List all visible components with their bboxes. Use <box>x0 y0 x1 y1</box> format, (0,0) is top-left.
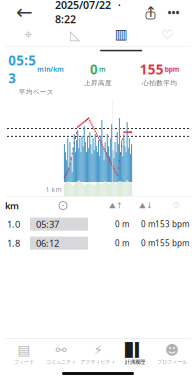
staticText: ▊▍ <box>125 343 145 358</box>
staticText: min/km <box>37 65 64 74</box>
staticText: 上昇高度 <box>84 79 112 87</box>
button[interactable]: Heart rate <box>144 24 190 46</box>
staticText: 0 m <box>115 238 129 248</box>
staticText: ☻ <box>165 343 179 358</box>
staticText: 05:37 <box>36 218 59 230</box>
button[interactable]: Back <box>9 1 39 23</box>
staticText: ⚯ <box>55 343 66 358</box>
button[interactable]: ⚯ <box>42 339 79 369</box>
staticText: km <box>5 199 19 212</box>
staticText: ↑ <box>144 4 156 20</box>
staticText: 1.8 <box>7 237 20 249</box>
button[interactable]: ⚡︎ <box>79 339 116 369</box>
button[interactable]: 1.0 <box>2 215 194 234</box>
button[interactable]: 1.8 <box>2 234 194 253</box>
staticText: ⛰︎↓ <box>139 201 153 210</box>
staticText: 心拍数平均 <box>142 79 177 87</box>
staticText: 0 m <box>141 219 155 229</box>
staticText: bpm <box>165 65 180 74</box>
staticText: ◺ <box>70 27 80 42</box>
staticText: ♡ <box>161 27 173 42</box>
staticText: プロフィール <box>157 359 187 365</box>
staticText: 153 bpm <box>155 219 189 229</box>
staticText: コミュニティ <box>46 359 76 365</box>
staticText: 06:12 <box>36 237 59 249</box>
staticText: 155 bpm <box>155 238 189 248</box>
button[interactable]: ▤ <box>5 339 42 369</box>
staticText: ⛰︎↑ <box>109 201 123 210</box>
button[interactable]: Map <box>5 24 52 46</box>
button[interactable]: More <box>160 1 186 23</box>
staticText: ← <box>16 1 33 23</box>
staticText: 05:53 <box>8 51 36 87</box>
staticText: m <box>99 65 106 74</box>
staticText: アクティビティ <box>80 359 115 365</box>
button[interactable]: Chart <box>52 24 98 46</box>
staticText: ••• <box>167 5 179 19</box>
button[interactable]: ▊▍ <box>116 339 153 369</box>
staticText: ▤ <box>17 343 30 358</box>
staticText: 計測履歴 <box>125 359 145 365</box>
staticText: 平均ペース <box>19 88 54 96</box>
staticText: ⚡︎ <box>93 343 102 358</box>
staticText: 1.0 <box>7 218 20 230</box>
staticText: フィード <box>14 359 34 365</box>
staticText: ▥ <box>115 27 128 42</box>
button[interactable]: Splits <box>98 24 144 46</box>
button[interactable]: Share <box>140 1 160 23</box>
staticText: 0 <box>90 60 98 78</box>
staticText: 0 m <box>115 219 129 229</box>
staticText: ♡ <box>172 201 179 210</box>
staticText: 155 <box>140 60 164 78</box>
staticText: 1 km <box>45 185 61 194</box>
staticText: ⌖ <box>25 28 33 41</box>
staticText: 2025/07/22 ・ 8:22 <box>55 0 125 26</box>
staticText: 0 m <box>141 238 155 248</box>
button[interactable]: ☻ <box>153 339 190 369</box>
